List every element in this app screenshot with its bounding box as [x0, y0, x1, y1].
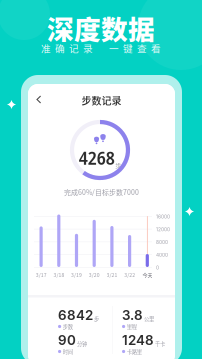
staticText: 3/22 [124, 271, 135, 278]
staticText: 4000 [156, 252, 168, 258]
staticText: 千卡 [155, 340, 165, 348]
staticText: 1248 [122, 332, 154, 348]
staticText: 步数 [63, 323, 73, 330]
staticText: 步 [115, 161, 121, 169]
staticText: 0 [156, 265, 159, 271]
staticText: 步 [94, 315, 99, 323]
staticText: 3.8 [122, 307, 143, 323]
staticText: 6842 [58, 307, 93, 323]
staticText: 完成60%/目标步数7000 [64, 187, 139, 197]
staticText: 分钟 [77, 340, 87, 348]
button[interactable]: Back [32, 91, 46, 108]
staticText: 4268 [79, 145, 115, 170]
staticText: 卡路里 [127, 348, 142, 355]
staticText: 3/18 [53, 271, 64, 278]
staticText: 公里 [144, 315, 154, 323]
staticText: 深度数据 [47, 8, 155, 47]
staticText: 3/21 [106, 271, 117, 278]
staticText: 步数记录 [81, 93, 121, 107]
staticText: 90 [58, 332, 76, 348]
staticText: 里程 [127, 323, 137, 330]
staticText: 今天 [142, 271, 152, 278]
staticText: 16000 [156, 214, 170, 220]
staticText: 时间 [63, 348, 73, 355]
staticText: 3/17 [36, 271, 47, 278]
staticText: 8000 [156, 239, 168, 245]
staticText: 准 确 记 录 一 键 查 看 [41, 41, 161, 55]
staticText: 12000 [156, 227, 170, 232]
staticText: 3/19 [71, 271, 82, 278]
staticText: 3/20 [89, 271, 100, 278]
